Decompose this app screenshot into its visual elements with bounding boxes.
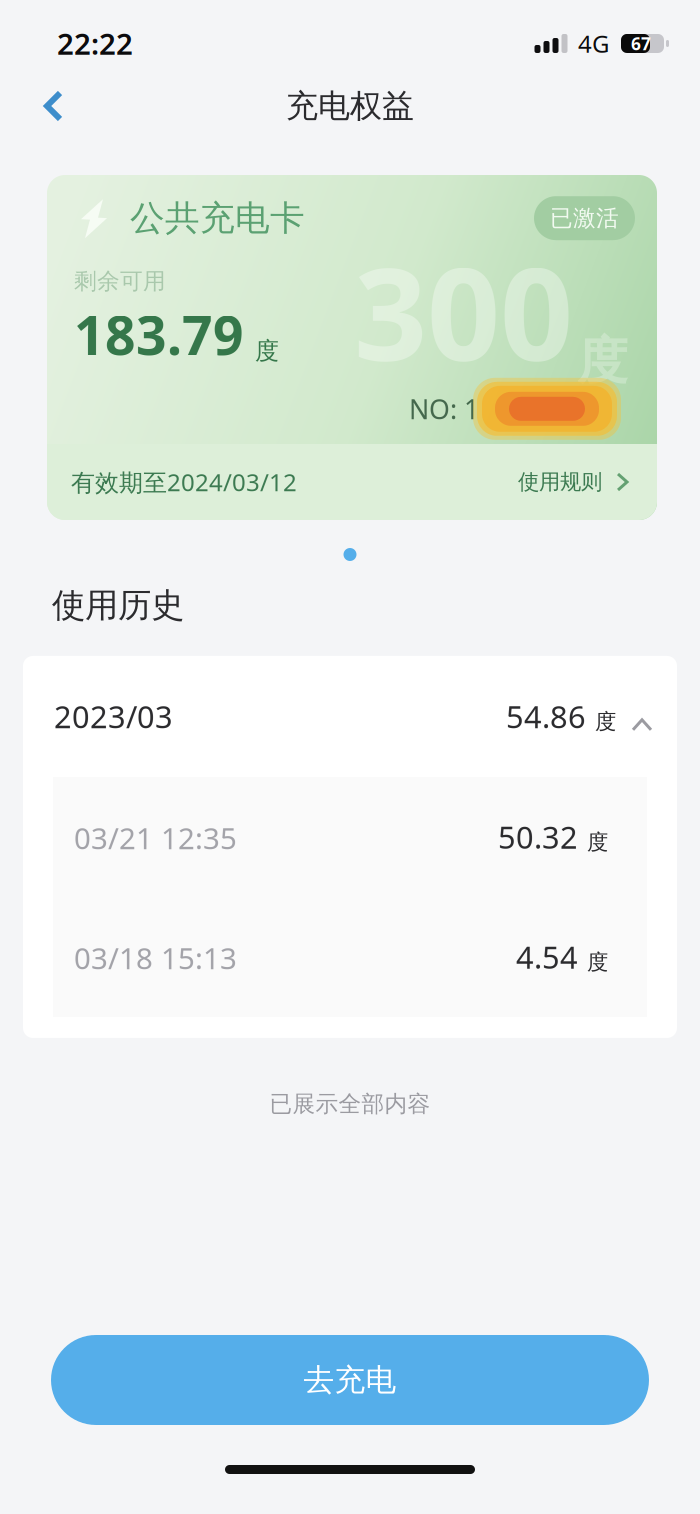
staticText: 公共充电卡: [130, 197, 305, 239]
staticText: 使用历史: [52, 585, 184, 626]
staticText: 度: [587, 949, 608, 975]
staticText: 67: [631, 32, 651, 55]
button[interactable]: 去充电: [51, 1335, 649, 1425]
staticText: 去充电: [303, 1361, 396, 1399]
staticText: 4.54: [516, 937, 578, 977]
staticText: 50.32: [498, 817, 578, 857]
staticText: 300: [354, 226, 573, 396]
staticText: 充电权益: [286, 86, 414, 126]
staticText: NO: 1: [409, 391, 479, 426]
staticText: 03/21 12:35: [74, 818, 237, 857]
staticText: 已激活: [550, 204, 619, 232]
staticText: 22:22: [57, 24, 133, 63]
staticText: 度: [595, 709, 616, 735]
staticText: 有效期至2024/03/12: [71, 466, 297, 498]
button[interactable]: 2023/03: [23, 656, 677, 777]
staticText: 03/18 15:13: [74, 938, 237, 977]
staticText: 度: [577, 330, 628, 392]
staticText: 剩余可用: [74, 267, 166, 295]
staticText: 度: [587, 829, 608, 855]
button[interactable]: Back: [22, 75, 84, 137]
staticText: 183.79: [74, 299, 244, 370]
staticText: 54.86: [506, 696, 586, 737]
staticText: 2023/03: [54, 696, 173, 737]
staticText: 使用规则: [518, 469, 602, 495]
staticText: 4G: [578, 27, 609, 59]
button[interactable]: 有效期至2024/03/12: [47, 444, 657, 520]
staticText: 度: [255, 336, 279, 366]
staticText: 已展示全部内容: [269, 1090, 430, 1118]
